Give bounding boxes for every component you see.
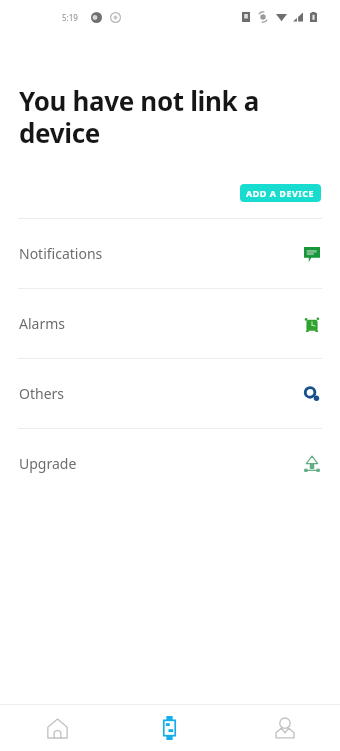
button[interactable]: Others: [0, 359, 340, 428]
button[interactable]: Device: [114, 705, 227, 751]
staticText: Alarms: [19, 314, 65, 333]
button[interactable]: ADD A DEVICE: [240, 184, 321, 202]
button[interactable]: Profile: [227, 705, 340, 751]
staticText: You have not link a device: [19, 83, 259, 151]
staticText: Notifications: [19, 244, 103, 263]
staticText: ADD A DEVICE: [246, 187, 315, 199]
staticText: 5:19: [62, 12, 78, 23]
staticText: Others: [19, 384, 65, 403]
button[interactable]: Home: [0, 705, 114, 751]
button[interactable]: Notifications: [0, 219, 340, 288]
button[interactable]: Upgrade: [0, 429, 340, 498]
button[interactable]: Alarms: [0, 289, 340, 358]
staticText: Upgrade: [19, 454, 77, 473]
